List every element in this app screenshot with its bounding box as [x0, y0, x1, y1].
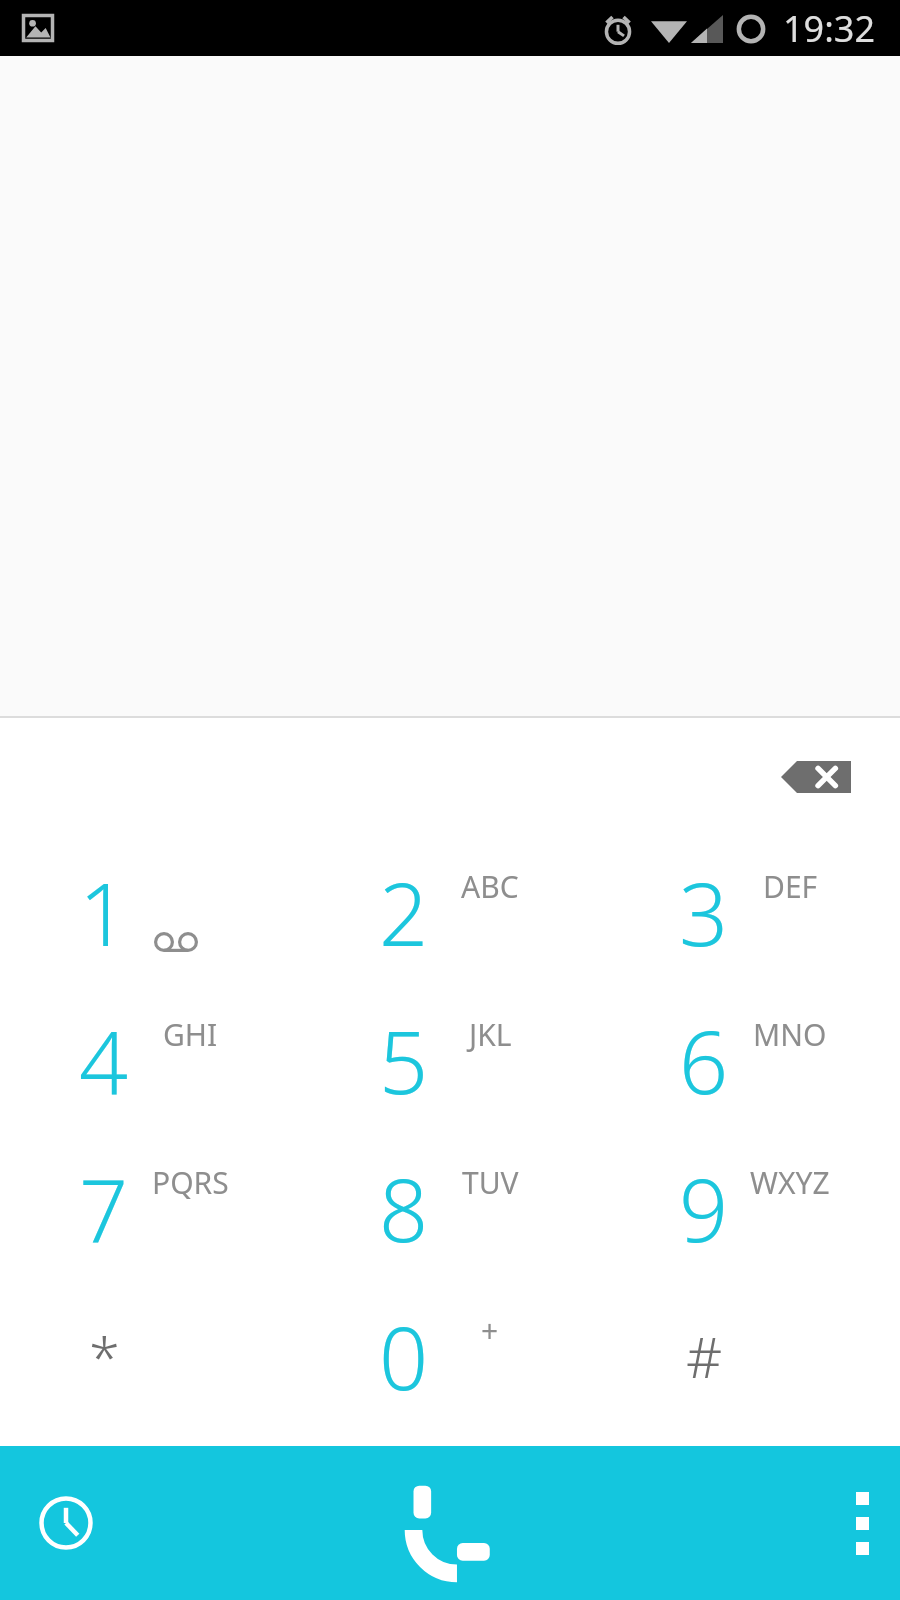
staticText: 4: [79, 1002, 129, 1119]
button[interactable]: 5: [300, 984, 600, 1132]
button[interactable]: 9: [600, 1132, 900, 1280]
staticText: DEF: [763, 866, 818, 907]
staticText: TUV: [462, 1162, 519, 1203]
button[interactable]: 1: [0, 836, 300, 984]
staticText: 2: [379, 854, 429, 971]
staticText: *: [89, 1318, 120, 1394]
button[interactable]: 4: [0, 984, 300, 1132]
staticText: JKL: [469, 1014, 512, 1055]
button[interactable]: 2: [300, 836, 600, 984]
staticText: PQRS: [152, 1162, 229, 1203]
staticText: GHI: [163, 1014, 218, 1055]
staticText: WXYZ: [750, 1162, 830, 1203]
staticText: #: [686, 1318, 723, 1394]
staticText: 0: [379, 1298, 429, 1415]
staticText: 1: [79, 854, 129, 971]
staticText: 9: [679, 1150, 729, 1267]
staticText: +: [481, 1310, 499, 1351]
button[interactable]: #: [600, 1280, 900, 1428]
staticText: MNO: [753, 1014, 827, 1055]
staticText: 5: [379, 1002, 429, 1119]
staticText: 6: [679, 1002, 729, 1119]
staticText: 19:32: [783, 4, 876, 53]
button[interactable]: 7: [0, 1132, 300, 1280]
button[interactable]: Backspace: [760, 736, 872, 818]
button[interactable]: 0: [300, 1280, 600, 1428]
button[interactable]: More options: [600, 1446, 900, 1600]
staticText: 3: [679, 854, 729, 971]
staticText: ABC: [461, 866, 519, 907]
button[interactable]: Call: [300, 1446, 600, 1600]
button[interactable]: Call history: [0, 1446, 300, 1600]
staticText: 8: [379, 1150, 429, 1267]
button[interactable]: 8: [300, 1132, 600, 1280]
button[interactable]: 6: [600, 984, 900, 1132]
button[interactable]: *: [0, 1280, 300, 1428]
button[interactable]: 3: [600, 836, 900, 984]
staticText: 7: [79, 1150, 129, 1267]
